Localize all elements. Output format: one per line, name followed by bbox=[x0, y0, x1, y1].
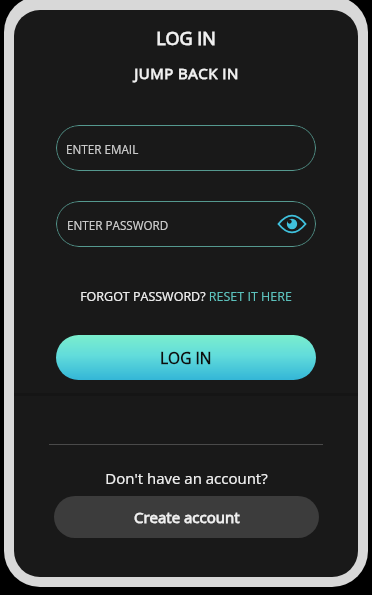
staticText: ENTER PASSWORD bbox=[67, 217, 169, 233]
staticText: FORGOT PASSWORD? RESET IT HERE bbox=[80, 288, 292, 305]
button[interactable]: ENTER PASSWORD bbox=[56, 201, 316, 247]
staticText: Don't have an account? bbox=[105, 468, 268, 488]
staticText: LOG IN bbox=[160, 347, 212, 368]
staticText: Create account bbox=[134, 507, 240, 527]
button[interactable]: ENTER EMAIL bbox=[56, 125, 316, 171]
button[interactable]: LOG IN bbox=[56, 335, 316, 380]
button[interactable]: Create account bbox=[54, 496, 319, 538]
staticText: LOG IN bbox=[156, 26, 216, 51]
button[interactable]: Show password bbox=[278, 210, 306, 238]
staticText: ENTER EMAIL bbox=[66, 141, 139, 157]
staticText: JUMP BACK IN bbox=[134, 63, 239, 83]
